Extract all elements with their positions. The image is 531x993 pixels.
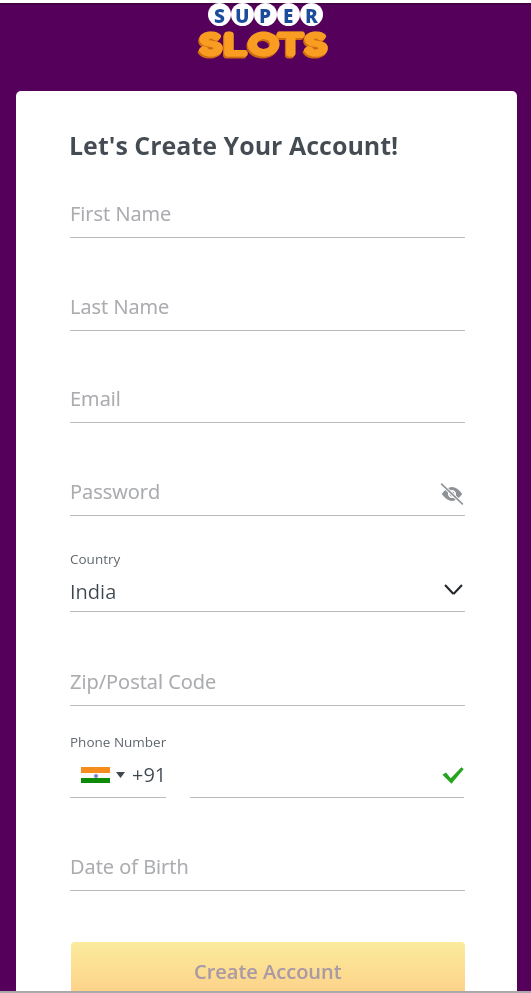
staticText: U [235, 3, 250, 26]
staticText: P [259, 3, 272, 26]
button[interactable]: First Name [70, 191, 465, 238]
staticText: S [214, 3, 225, 26]
button[interactable]: Date of Birth [70, 844, 465, 891]
staticText: +91 [132, 761, 167, 788]
staticText: Country [70, 550, 121, 568]
staticText: SLOTS [199, 21, 328, 65]
staticText: Email [70, 385, 121, 412]
button[interactable]: Country [70, 551, 465, 612]
button[interactable]: Show password [439, 481, 464, 506]
staticText: India [70, 578, 117, 605]
button[interactable]: Last Name [70, 284, 465, 331]
staticText: Last Name [70, 293, 170, 320]
staticText: First Name [70, 200, 172, 227]
button[interactable]: Select country [439, 577, 467, 601]
button[interactable]: Zip/Postal Code [70, 659, 465, 706]
staticText: SLOTS [198, 23, 327, 67]
staticText: R [305, 3, 318, 26]
button[interactable]: +91 [81, 761, 167, 788]
staticText: Password [70, 478, 161, 505]
staticText: Phone Number [70, 733, 167, 751]
staticText: Zip/Postal Code [70, 668, 217, 695]
button[interactable]: Create Account [71, 942, 465, 993]
staticText: Create Account [194, 958, 342, 985]
button[interactable] [190, 768, 464, 798]
staticText: E [283, 3, 294, 26]
button[interactable]: Password [70, 469, 465, 516]
other: Phone number verified [442, 767, 465, 790]
button[interactable]: Email [70, 376, 465, 423]
staticText: Date of Birth [70, 853, 189, 880]
staticText: Let's Create Your Account! [69, 128, 399, 162]
